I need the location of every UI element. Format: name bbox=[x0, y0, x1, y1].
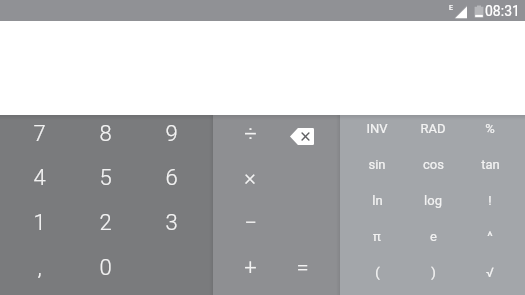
staticText: = bbox=[296, 255, 309, 281]
button[interactable]: % bbox=[462, 110, 518, 146]
button[interactable]: RAD bbox=[405, 110, 461, 146]
button[interactable]: 4 bbox=[6, 155, 72, 200]
button[interactable]: ! bbox=[462, 182, 518, 218]
button[interactable]: ln bbox=[349, 182, 405, 218]
button[interactable]: 9 bbox=[138, 111, 204, 156]
staticText: 1 bbox=[33, 210, 46, 236]
staticText: sin bbox=[368, 157, 386, 172]
button[interactable]: ^ bbox=[462, 218, 518, 254]
button[interactable]: Add bbox=[224, 245, 276, 290]
staticText: 0 bbox=[99, 255, 112, 281]
button[interactable]: π bbox=[349, 218, 405, 254]
staticText: 7 bbox=[33, 121, 46, 147]
button[interactable]: Divide bbox=[224, 111, 276, 156]
button[interactable]: Subtract bbox=[224, 200, 276, 245]
staticText: ln bbox=[372, 193, 383, 208]
staticText: INV bbox=[366, 121, 388, 136]
staticText: ^ bbox=[487, 229, 493, 244]
button[interactable]: 3 bbox=[138, 200, 204, 245]
other: Mobile signal bbox=[454, 5, 468, 19]
staticText: + bbox=[244, 255, 257, 281]
staticText: ! bbox=[488, 193, 492, 208]
button[interactable]: cos bbox=[405, 146, 461, 182]
button[interactable]: , bbox=[6, 245, 72, 290]
button[interactable]: Backspace bbox=[274, 111, 330, 156]
button[interactable]: 6 bbox=[138, 155, 204, 200]
staticText: × bbox=[244, 165, 256, 191]
staticText: , bbox=[37, 255, 42, 281]
staticText: ) bbox=[431, 265, 436, 280]
button[interactable]: tan bbox=[462, 146, 518, 182]
staticText: 2 bbox=[99, 210, 112, 236]
staticText: π bbox=[373, 229, 381, 244]
staticText: log bbox=[424, 193, 442, 208]
staticText: RAD bbox=[420, 121, 446, 136]
staticText: 08:31 bbox=[485, 3, 520, 19]
staticText: − bbox=[244, 210, 257, 236]
button[interactable]: Equals bbox=[276, 245, 328, 290]
button[interactable]: ) bbox=[405, 254, 461, 290]
staticText: √ bbox=[486, 265, 494, 280]
button[interactable]: ( bbox=[349, 254, 405, 290]
button[interactable]: 0 bbox=[72, 245, 138, 290]
button[interactable]: √ bbox=[462, 254, 518, 290]
button[interactable]: log bbox=[405, 182, 461, 218]
staticText: ÷ bbox=[244, 121, 257, 147]
button[interactable]: sin bbox=[349, 146, 405, 182]
other: Battery bbox=[474, 5, 484, 18]
staticText: cos bbox=[423, 157, 444, 172]
staticText: 9 bbox=[165, 121, 178, 147]
button[interactable]: Multiply bbox=[224, 155, 276, 200]
staticText: 3 bbox=[165, 210, 178, 236]
staticText: 8 bbox=[99, 121, 112, 147]
staticText: 5 bbox=[99, 165, 112, 191]
button[interactable]: 7 bbox=[6, 111, 72, 156]
button[interactable]: 8 bbox=[72, 111, 138, 156]
button[interactable]: 2 bbox=[72, 200, 138, 245]
staticText: e bbox=[430, 229, 437, 244]
staticText: E bbox=[449, 4, 453, 12]
button[interactable]: 1 bbox=[6, 200, 72, 245]
staticText: 6 bbox=[165, 165, 178, 191]
staticText: 4 bbox=[33, 165, 46, 191]
staticText: ( bbox=[375, 265, 380, 280]
button[interactable]: 5 bbox=[72, 155, 138, 200]
button[interactable]: INV bbox=[349, 110, 405, 146]
staticText: tan bbox=[481, 157, 500, 172]
button[interactable]: e bbox=[405, 218, 461, 254]
staticText: % bbox=[485, 121, 495, 136]
